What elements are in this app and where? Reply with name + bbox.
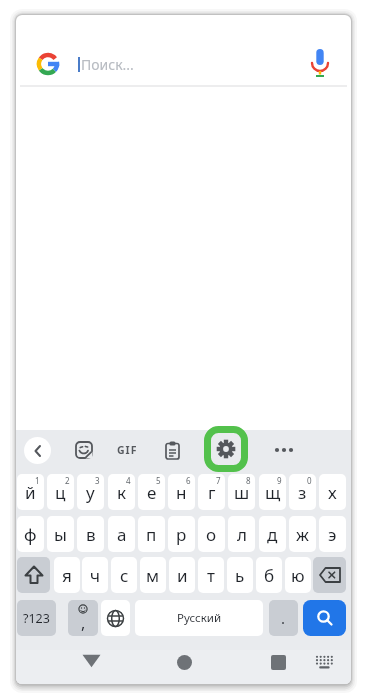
staticText: Русский <box>177 610 222 626</box>
staticText: 0 <box>307 475 312 486</box>
staticText: п <box>146 523 157 546</box>
button[interactable] <box>17 557 50 593</box>
button[interactable]: у <box>77 474 104 510</box>
button[interactable] <box>315 655 334 669</box>
button[interactable]: а <box>108 516 135 552</box>
button[interactable]: д <box>259 516 286 552</box>
staticText: р <box>176 523 187 546</box>
staticText: б <box>264 564 275 587</box>
button[interactable] <box>24 437 51 464</box>
staticText: а <box>117 523 127 546</box>
staticText: е <box>147 481 157 504</box>
button[interactable] <box>82 654 101 668</box>
button[interactable]: х <box>319 474 346 510</box>
button[interactable] <box>75 441 93 459</box>
button[interactable]: ы <box>47 516 74 552</box>
button[interactable]: . <box>269 600 298 636</box>
staticText: и <box>177 564 188 587</box>
staticText: ч <box>90 564 101 587</box>
staticText: м <box>146 564 160 587</box>
button[interactable]: э <box>319 516 346 552</box>
button[interactable]: к <box>108 474 135 510</box>
button[interactable]: ц <box>47 474 74 510</box>
staticText: ь <box>235 564 245 587</box>
button[interactable]: GIF <box>111 441 143 459</box>
staticText: э <box>328 523 337 546</box>
button[interactable]: ь <box>227 557 253 593</box>
staticText: ж <box>296 523 309 546</box>
button[interactable]: ж <box>289 516 316 552</box>
button[interactable]: е <box>138 474 165 510</box>
staticText: Поиск... <box>81 55 134 74</box>
staticText: т <box>207 564 215 587</box>
staticText: щ <box>265 481 281 504</box>
staticText: . <box>281 608 286 628</box>
staticText: 8 <box>246 475 251 486</box>
staticText: 5 <box>156 475 161 486</box>
staticText: ?123 <box>23 610 50 627</box>
staticText: ы <box>54 523 67 546</box>
staticText: у <box>86 481 95 504</box>
button[interactable]: п <box>138 516 165 552</box>
staticText: ю <box>291 564 305 587</box>
staticText: в <box>86 523 96 546</box>
button[interactable]: б <box>256 557 282 593</box>
button[interactable]: щ <box>259 474 286 510</box>
button[interactable] <box>177 655 192 670</box>
staticText: GIF <box>117 443 138 457</box>
button[interactable]: ю <box>285 557 311 593</box>
staticText: 9 <box>277 475 282 486</box>
button[interactable] <box>303 600 346 636</box>
button[interactable]: г <box>198 474 225 510</box>
staticText: ш <box>234 481 250 504</box>
button[interactable]: л <box>228 516 255 552</box>
staticText: н <box>176 481 187 504</box>
button[interactable]: т <box>198 557 224 593</box>
button[interactable]: р <box>168 516 195 552</box>
staticText: 3 <box>95 475 100 486</box>
staticText: , <box>81 612 86 634</box>
button[interactable]: , <box>68 600 98 636</box>
button[interactable]: с <box>111 557 137 593</box>
staticText: я <box>62 564 72 587</box>
staticText: о <box>206 523 217 546</box>
button[interactable]: н <box>168 474 195 510</box>
button[interactable]: й <box>17 474 44 510</box>
staticText: л <box>237 523 247 546</box>
button[interactable]: о <box>198 516 225 552</box>
button[interactable]: и <box>169 557 195 593</box>
button[interactable]: я <box>54 557 80 593</box>
button[interactable]: в <box>77 516 104 552</box>
button[interactable]: ш <box>228 474 255 510</box>
button[interactable] <box>165 441 180 460</box>
button[interactable] <box>310 48 330 78</box>
button[interactable]: ф <box>17 516 44 552</box>
button[interactable] <box>36 52 60 76</box>
button[interactable]: м <box>140 557 166 593</box>
button[interactable] <box>271 655 286 670</box>
button[interactable] <box>204 426 248 472</box>
staticText: х <box>328 481 337 504</box>
staticText: к <box>117 481 127 504</box>
button[interactable]: Русский <box>135 600 263 636</box>
button[interactable] <box>101 600 130 636</box>
staticText: 7 <box>216 475 221 486</box>
button[interactable]: з <box>289 474 316 510</box>
button[interactable]: ?123 <box>17 600 56 636</box>
staticText: 4 <box>126 475 131 486</box>
staticText: г <box>208 481 216 504</box>
staticText: 2 <box>65 475 70 486</box>
staticText: ф <box>24 523 37 546</box>
staticText: д <box>267 523 278 546</box>
staticText: з <box>298 481 307 504</box>
staticText: с <box>120 564 129 587</box>
button[interactable] <box>270 443 298 457</box>
staticText: й <box>25 481 36 504</box>
staticText: 1 <box>35 475 40 486</box>
button[interactable]: ч <box>82 557 108 593</box>
staticText: 6 <box>186 475 191 486</box>
button[interactable] <box>313 557 346 593</box>
staticText: ц <box>55 481 66 504</box>
